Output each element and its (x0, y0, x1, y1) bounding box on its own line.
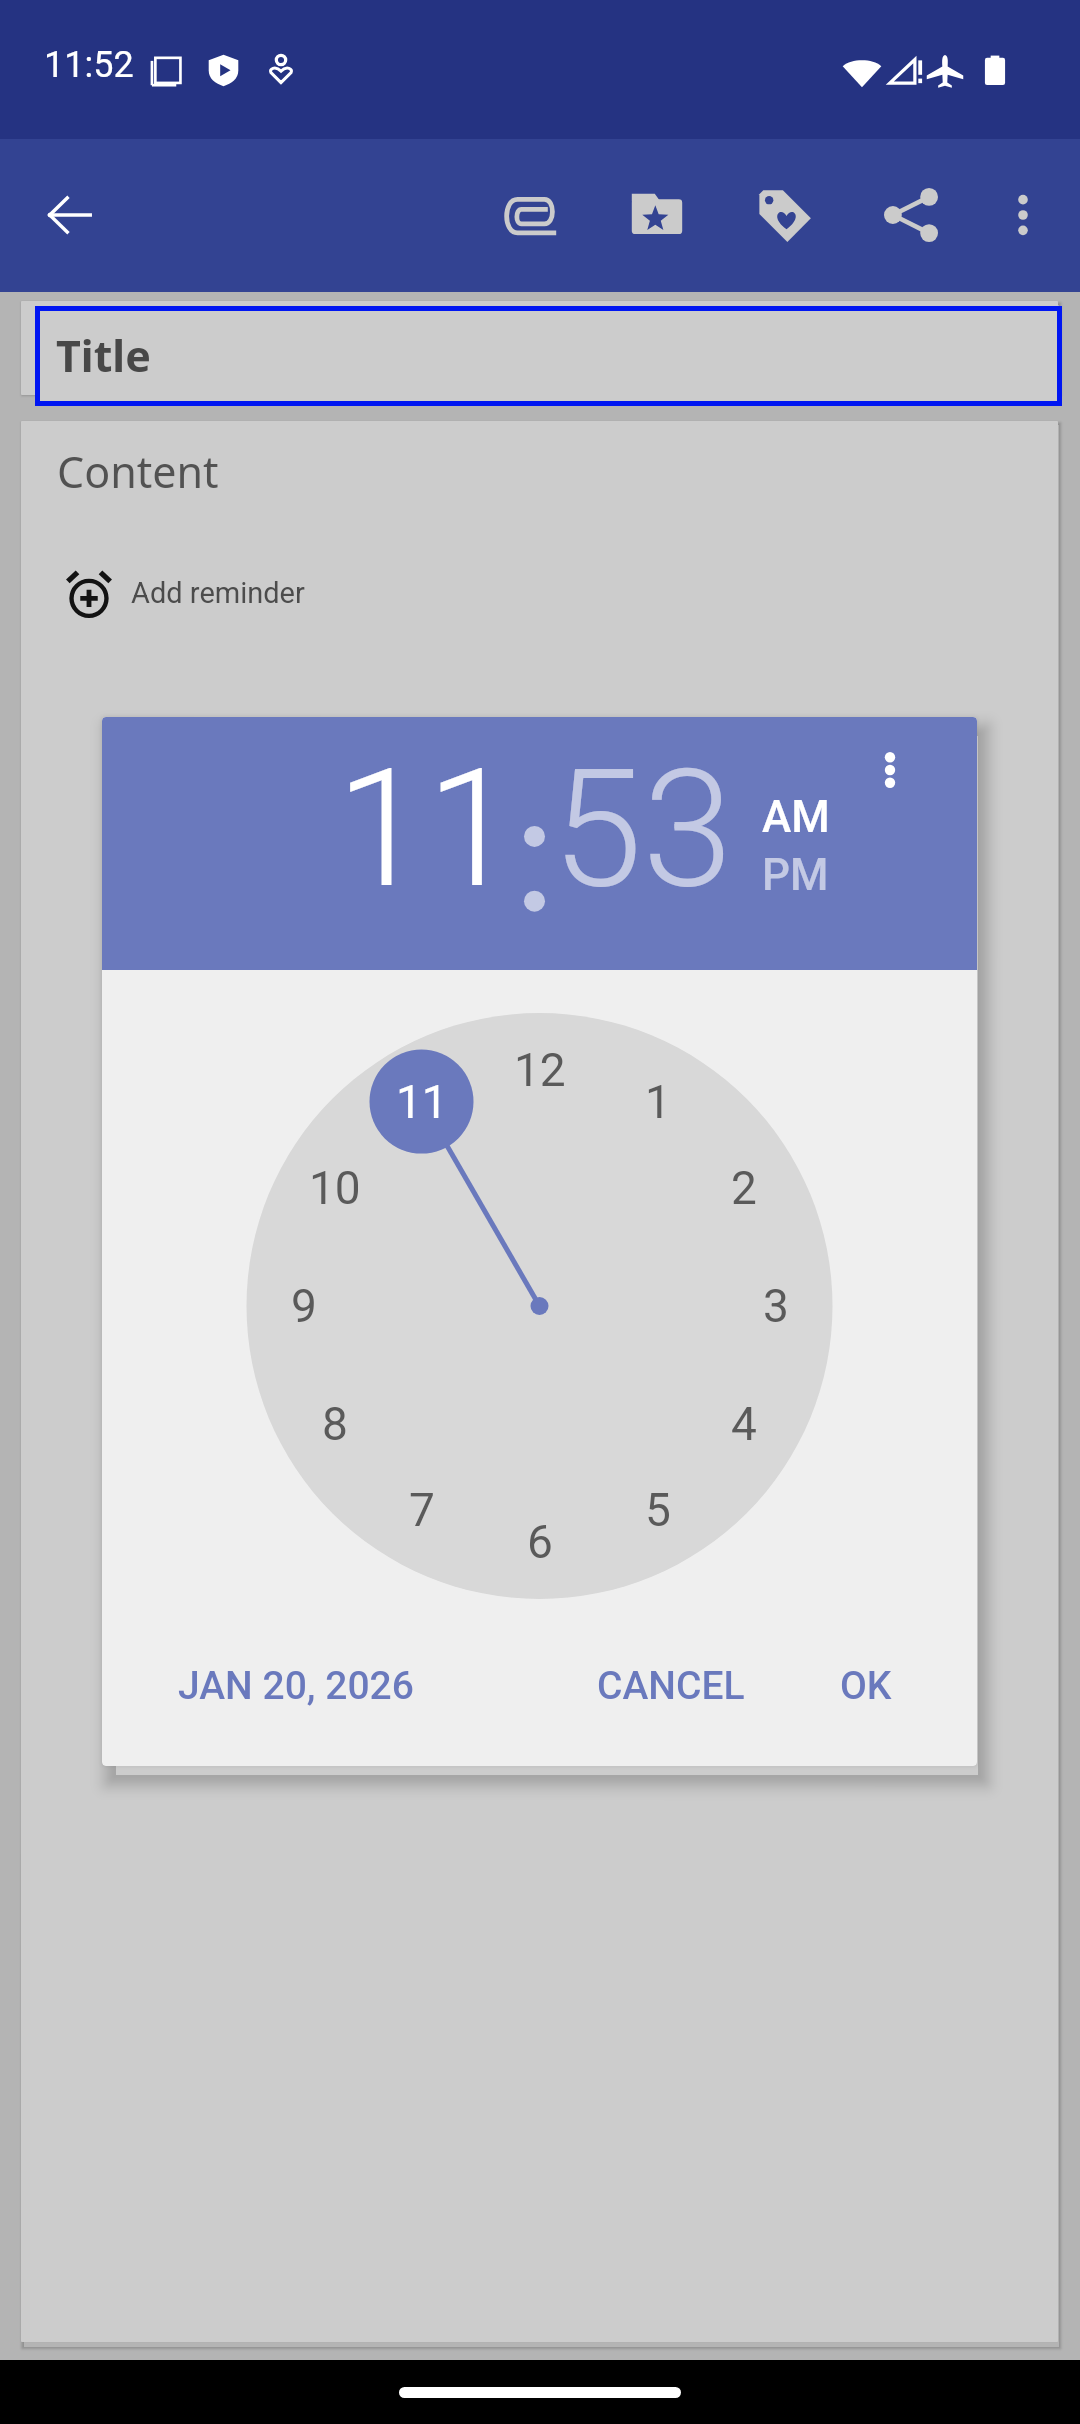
button[interactable]: PM (762, 849, 829, 901)
staticText: 12 (514, 1043, 566, 1097)
staticText: 7 (409, 1483, 435, 1537)
staticText: 4 (731, 1397, 757, 1451)
staticText: 5 (645, 1483, 671, 1537)
staticText: Add reminder (131, 576, 305, 610)
button[interactable]: Add reminder (66, 571, 305, 617)
button[interactable]: 8 (285, 1374, 385, 1474)
button[interactable]: 1 (608, 1052, 708, 1152)
button[interactable]: 11 (372, 1052, 472, 1152)
button[interactable]: 7 (372, 1460, 472, 1560)
button[interactable]: Content (21, 421, 1058, 2342)
button[interactable]: JAN 20, 2026 (162, 1642, 430, 1730)
staticText: 11:52 (44, 44, 134, 86)
button[interactable]: 3 (726, 1256, 826, 1356)
staticText: AM (762, 791, 830, 843)
button[interactable]: Title (40, 311, 1057, 401)
button[interactable]: Back (18, 163, 122, 267)
button[interactable]: Share (859, 163, 963, 267)
button[interactable]: AM (762, 791, 830, 843)
staticText: 9 (291, 1279, 317, 1333)
staticText: 6 (527, 1515, 553, 1569)
button[interactable]: More options (854, 734, 926, 806)
button[interactable]: 6 (490, 1492, 590, 1592)
staticText: CANCEL (597, 1663, 745, 1709)
button[interactable]: 9 (254, 1256, 354, 1356)
button[interactable]: 5 (608, 1460, 708, 1560)
button[interactable]: 53 (552, 734, 733, 925)
button[interactable]: 10 (285, 1138, 385, 1238)
button[interactable]: Labels (732, 163, 836, 267)
staticText: JAN 20, 2026 (178, 1663, 414, 1709)
button[interactable]: 4 (694, 1374, 794, 1474)
staticText: Title (56, 326, 151, 385)
button[interactable]: 11 (336, 734, 517, 925)
staticText: OK (840, 1663, 892, 1709)
staticText: Content (57, 442, 219, 501)
staticText: 1 (645, 1075, 671, 1129)
staticText: 2 (731, 1161, 757, 1215)
button[interactable]: 2 (694, 1138, 794, 1238)
button[interactable]: OK (824, 1642, 908, 1730)
button[interactable]: Move to folder (605, 163, 709, 267)
staticText: 8 (322, 1397, 348, 1451)
staticText: 10 (309, 1161, 361, 1215)
staticText: 3 (763, 1279, 789, 1333)
staticText: PM (762, 849, 829, 901)
button[interactable]: 12 (490, 1020, 590, 1120)
button[interactable]: Attach file (479, 163, 583, 267)
button[interactable]: CANCEL (581, 1642, 761, 1730)
staticText: 11 (396, 1075, 448, 1129)
button[interactable]: More options (971, 163, 1075, 267)
